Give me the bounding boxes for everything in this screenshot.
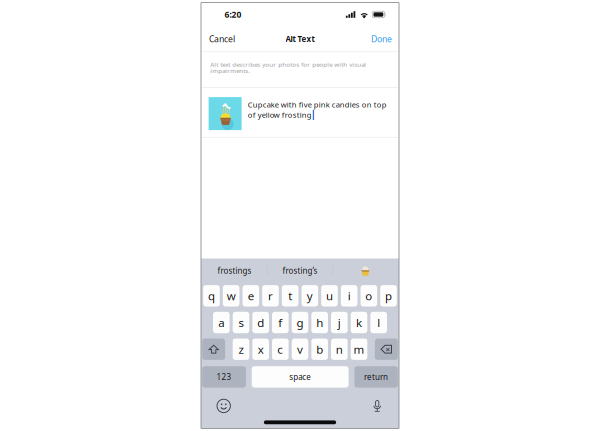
staticText: a xyxy=(218,315,224,330)
staticText: e xyxy=(248,288,254,304)
staticText: return xyxy=(364,371,388,382)
button[interactable]: p xyxy=(380,285,397,306)
button[interactable]: t xyxy=(282,285,298,306)
staticText: d xyxy=(257,315,264,330)
staticText: space xyxy=(289,371,311,382)
staticText: h xyxy=(316,315,323,330)
staticText: c xyxy=(277,341,283,357)
button[interactable]: g xyxy=(292,312,308,333)
staticText: of yellow frosting xyxy=(248,110,312,120)
button[interactable]: k xyxy=(351,312,367,333)
staticText: o xyxy=(365,288,372,304)
button[interactable]: z xyxy=(233,338,249,360)
button[interactable]: e xyxy=(242,285,259,306)
staticText: frostings xyxy=(218,265,252,276)
staticText: t xyxy=(288,288,292,304)
staticText: n xyxy=(336,341,343,357)
button[interactable]: x xyxy=(252,338,269,360)
button[interactable]: Delete xyxy=(375,338,398,360)
staticText: Done xyxy=(371,33,392,45)
staticText: r xyxy=(268,288,273,304)
staticText: g xyxy=(296,315,303,330)
button[interactable]: u xyxy=(321,285,338,306)
staticText: u xyxy=(326,288,333,304)
button[interactable]: n xyxy=(331,338,348,360)
staticText: s xyxy=(238,315,243,330)
button[interactable]: return xyxy=(354,366,398,388)
button[interactable]: b xyxy=(311,338,328,360)
staticText: z xyxy=(238,341,243,357)
button[interactable]: Emoji keyboard xyxy=(217,399,231,413)
staticText: Alt Text xyxy=(285,34,314,44)
staticText: q xyxy=(208,288,215,304)
staticText: p xyxy=(385,288,392,304)
staticText: Alt text describes your photos for peopl… xyxy=(210,60,366,75)
button[interactable]: j xyxy=(331,312,348,333)
staticText: v xyxy=(297,341,303,357)
staticText: f xyxy=(278,315,282,330)
button[interactable]: space xyxy=(252,366,349,388)
staticText: j xyxy=(338,315,341,330)
staticText: w xyxy=(227,288,236,304)
staticText: m xyxy=(353,341,364,357)
button[interactable]: frostings xyxy=(202,258,267,283)
staticText: l xyxy=(377,315,380,330)
button[interactable]: f xyxy=(272,312,289,333)
button[interactable]: c xyxy=(272,338,289,360)
button[interactable]: d xyxy=(252,312,269,333)
button[interactable]: Dictation xyxy=(373,399,382,413)
button[interactable]: s xyxy=(233,312,249,333)
staticText: 123 xyxy=(216,371,231,382)
button[interactable]: w xyxy=(223,285,239,306)
button[interactable]: q xyxy=(203,285,220,306)
button[interactable]: v xyxy=(292,338,308,360)
staticText: Cancel xyxy=(209,33,235,45)
staticText: frosting’s xyxy=(282,265,317,276)
button[interactable]: Done xyxy=(367,28,395,50)
button[interactable]: Cancel xyxy=(205,28,238,50)
button[interactable]: o xyxy=(360,285,377,306)
staticText: b xyxy=(316,341,323,357)
staticText: 6:20 xyxy=(224,9,241,20)
button[interactable]: 123 xyxy=(202,366,246,388)
button[interactable]: a xyxy=(213,312,230,333)
button[interactable]: i xyxy=(341,285,357,306)
button[interactable]: h xyxy=(311,312,328,333)
button[interactable]: Shift xyxy=(202,338,225,360)
staticText: k xyxy=(356,315,362,330)
button[interactable]: m xyxy=(351,338,367,360)
button[interactable]: frosting’s xyxy=(268,258,332,283)
button[interactable]: y xyxy=(301,285,318,306)
staticText: Cupcake with five pink candles on top xyxy=(248,99,387,110)
staticText: x xyxy=(258,341,264,357)
button[interactable]: Cupcake emoji suggestion xyxy=(333,258,398,283)
staticText: y xyxy=(307,288,313,304)
button[interactable]: r xyxy=(262,285,279,306)
staticText: i xyxy=(348,288,351,304)
button[interactable]: l xyxy=(370,312,387,333)
